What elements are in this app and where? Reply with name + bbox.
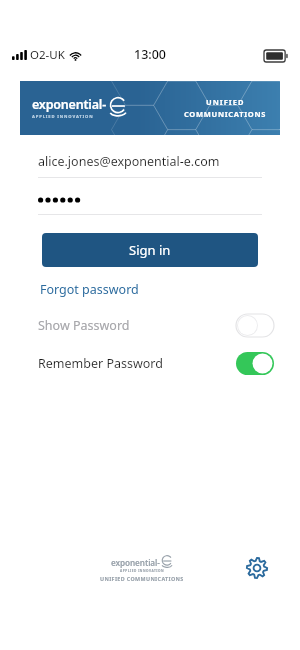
staticText: UNIFIED COMMUNICATIONS	[100, 575, 184, 582]
staticText: Sign in	[129, 241, 171, 259]
staticText: COMMUNICATIONS	[184, 109, 267, 119]
staticText: Show Password	[38, 317, 130, 334]
button[interactable]: Show Password	[0, 312, 300, 338]
button[interactable]: alice.jones@exponential-e.com	[38, 149, 262, 173]
staticText: Remember Password	[38, 355, 163, 372]
staticText: APPLIED INNOVATION	[120, 569, 165, 573]
staticText: alice.jones@exponential-e.com	[38, 153, 220, 170]
button[interactable]: Settings	[242, 553, 272, 583]
staticText: exponential-	[111, 557, 160, 568]
staticText: Forgot password	[40, 281, 139, 298]
button[interactable]: Sign in	[42, 233, 258, 267]
staticText: 13:00	[134, 46, 167, 63]
staticText: O2-UK	[30, 47, 65, 63]
staticText: exponential-	[32, 96, 106, 113]
button[interactable]: Forgot password	[40, 279, 139, 300]
button[interactable]: Remember Password	[0, 350, 300, 376]
staticText: APPLIED INNOVATION	[32, 114, 94, 120]
button[interactable]	[38, 190, 262, 210]
staticText: UNIFIED	[206, 97, 245, 107]
